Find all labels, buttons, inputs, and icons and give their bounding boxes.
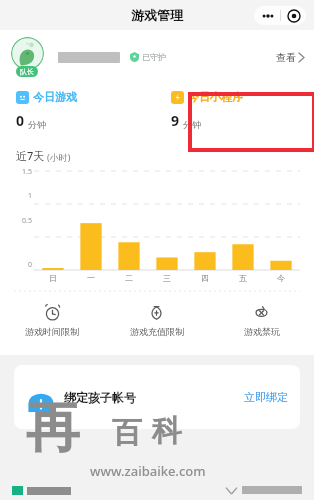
button[interactable]: 今日小程序 (171, 90, 314, 130)
button[interactable]: 今日游戏 (16, 90, 157, 130)
staticText: 绑定孩子帐号 (64, 390, 136, 405)
staticText: 三 (163, 273, 171, 283)
staticText: 五 (239, 273, 247, 283)
button[interactable]: 队长 (0, 30, 314, 84)
staticText: 今日小程序 (188, 90, 243, 104)
button[interactable]: 游戏禁玩 (209, 302, 314, 339)
staticText: 日 (49, 273, 57, 283)
staticText: 今日游戏 (33, 90, 77, 104)
button[interactable]: More (255, 6, 280, 25)
staticText: 近7天 (16, 148, 45, 163)
staticText: 科 (152, 412, 182, 450)
staticText: 0 (8, 260, 32, 270)
staticText: 游戏充值限制 (130, 326, 184, 337)
button[interactable]: 绑定孩子帐号 (14, 365, 300, 429)
staticText: 查看 (276, 51, 296, 64)
staticText: 一 (87, 273, 95, 283)
staticText: 队长 (20, 67, 34, 76)
button[interactable]: Close (281, 6, 306, 25)
button[interactable]: 游戏充值限制 (104, 302, 209, 339)
staticText: 分钟 (28, 119, 46, 130)
staticText: 1.5 (8, 167, 32, 177)
button[interactable] (0, 486, 157, 495)
staticText: 百 (112, 414, 142, 452)
staticText: 已守护 (142, 52, 166, 62)
staticText: (小时) (47, 151, 71, 163)
staticText: 游戏禁玩 (244, 326, 280, 337)
staticText: 0.5 (8, 216, 32, 226)
staticText: www.zaibaike.com (90, 462, 206, 480)
staticText: 游戏管理 (131, 7, 183, 23)
staticText: 立即绑定 (244, 390, 288, 404)
button[interactable]: 游戏时间限制 (0, 302, 104, 339)
staticText: 9 (171, 111, 180, 130)
staticText: 今 (277, 273, 285, 283)
staticText: 游戏时间限制 (25, 326, 79, 337)
staticText: 四 (201, 273, 209, 283)
staticText: 二 (125, 273, 133, 283)
staticText: 再 (26, 394, 80, 462)
staticText: 分钟 (183, 119, 201, 130)
staticText: 0 (16, 111, 25, 130)
button[interactable] (157, 486, 314, 494)
staticText: 1 (8, 191, 32, 201)
